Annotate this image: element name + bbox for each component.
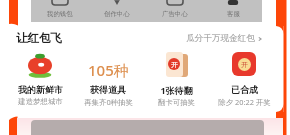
button[interactable]: 我的钱包: [31, 0, 88, 22]
staticText: 创作中心: [104, 10, 130, 18]
button[interactable]: 开: [142, 48, 210, 107]
staticText: 建造梦想城市: [18, 97, 63, 106]
staticText: 开: [171, 60, 178, 69]
button[interactable]: 广告中心: [146, 0, 204, 22]
staticText: 已合成: [231, 84, 258, 95]
staticText: 1张待翻: [160, 84, 193, 96]
staticText: 再集齐0种抽奖: [84, 97, 133, 107]
button[interactable]: 瓜分千万现金红包: [186, 33, 263, 44]
staticText: 105种: [88, 60, 129, 80]
staticText: 我的新鲜市: [18, 84, 63, 95]
staticText: 翻卡可抽奖: [158, 98, 195, 107]
staticText: 广告中心: [162, 10, 188, 18]
staticText: 客服: [227, 10, 240, 18]
button[interactable]: 客服: [204, 0, 262, 22]
staticText: 开: [241, 60, 248, 69]
staticText: 获得道具: [90, 84, 126, 95]
staticText: 瓜分千万现金红包: [186, 33, 255, 44]
button[interactable]: 105种: [74, 48, 142, 107]
button[interactable]: 我的新鲜市: [6, 48, 74, 106]
staticText: 我的钱包: [47, 10, 73, 18]
button[interactable]: 创作中心: [88, 0, 146, 22]
button[interactable]: 开: [210, 48, 278, 107]
staticText: 让红包飞: [16, 31, 62, 45]
staticText: 除夕 20:22 开奖: [218, 97, 271, 107]
